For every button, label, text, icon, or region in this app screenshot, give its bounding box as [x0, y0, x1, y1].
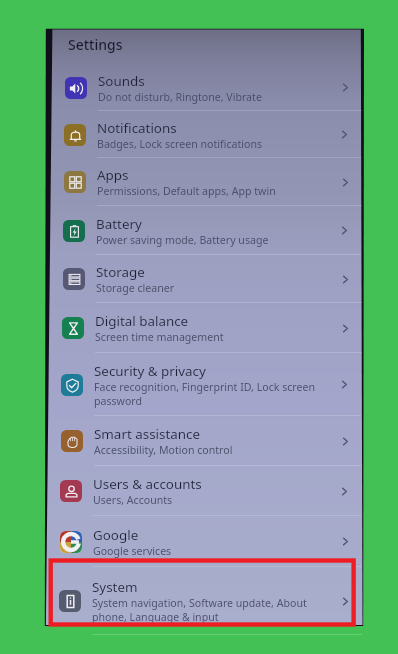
staticText: Apps — [97, 166, 129, 184]
button[interactable]: Notifications — [51, 111, 361, 158]
button[interactable]: Smart assistance — [48, 416, 362, 466]
staticText: Battery — [96, 215, 142, 233]
staticText: Notifications — [97, 119, 177, 137]
staticText: Google services — [93, 544, 172, 558]
staticText: Security & privacy — [94, 362, 206, 380]
staticText: Do not disturb, Ringtone, Vibrate — [98, 90, 262, 104]
button[interactable]: Settings — [52, 29, 361, 64]
staticText: password — [94, 394, 143, 408]
staticText: phone, Language & input — [92, 610, 219, 624]
staticText: Screen time management — [95, 330, 224, 344]
staticText: Face recognition, Fingerprint ID, Lock s… — [94, 380, 315, 394]
button[interactable]: Sounds — [52, 64, 362, 111]
staticText: Storage cleaner — [96, 281, 175, 295]
button[interactable]: Security & privacy — [48, 353, 361, 416]
button[interactable]: System — [46, 567, 362, 635]
staticText: Users & accounts — [93, 475, 202, 493]
staticText: Smart assistance — [94, 425, 201, 443]
staticText: System navigation, Software update, Abou… — [92, 596, 307, 610]
staticText: Power saving mode, Battery usage — [96, 233, 269, 247]
staticText: Permissions, Default apps, App twin — [97, 184, 276, 198]
staticText: Storage — [96, 263, 145, 281]
button[interactable]: Digital balance — [49, 303, 362, 353]
button[interactable]: Google — [47, 516, 362, 567]
staticText: Sounds — [98, 72, 145, 90]
staticText: Accessibility, Motion control — [94, 443, 233, 457]
staticText: Users, Accounts — [93, 493, 173, 507]
button[interactable]: Storage — [50, 255, 362, 303]
staticText: Google — [93, 526, 139, 544]
button[interactable]: Apps — [51, 158, 362, 206]
button[interactable]: Users & accounts — [47, 466, 361, 516]
button[interactable]: Battery — [50, 206, 361, 255]
staticText: System — [92, 578, 138, 596]
staticText: Settings — [68, 35, 123, 54]
staticText: Digital balance — [95, 312, 189, 330]
staticText: Badges, Lock screen notifications — [97, 137, 263, 151]
